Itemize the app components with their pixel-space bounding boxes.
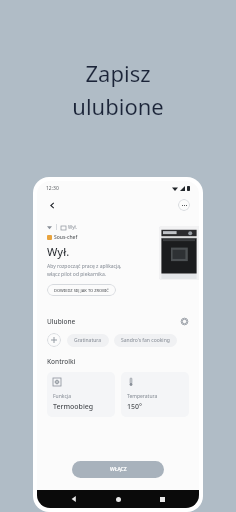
staticText: 12:30 bbox=[46, 185, 59, 192]
button[interactable]: Temperatura bbox=[121, 372, 189, 417]
button[interactable]: Add favorite bbox=[47, 333, 61, 347]
staticText: Ulubione bbox=[47, 317, 76, 326]
button[interactable]: Sandro's fan cooking bbox=[114, 334, 177, 347]
staticText: Aby rozpocząć pracę z aplikacją, włącz p… bbox=[47, 263, 122, 278]
button[interactable]: Favorites settings bbox=[179, 316, 189, 326]
button[interactable]: WŁĄCZ bbox=[72, 461, 164, 478]
staticText: Funkcja bbox=[53, 393, 71, 400]
staticText: Wył. bbox=[47, 244, 70, 259]
button[interactable]: DOWIEDZ SIĘ JAK TO ZROBIĆ bbox=[47, 284, 116, 296]
button[interactable]: Home bbox=[111, 492, 125, 506]
staticText: Gratinatura bbox=[74, 337, 102, 344]
staticText: Sous-chef bbox=[54, 234, 78, 241]
button[interactable]: More options bbox=[178, 199, 190, 211]
staticText: DOWIEDZ SIĘ JAK TO ZROBIĆ bbox=[54, 288, 109, 293]
staticText: ulubione bbox=[72, 91, 164, 121]
button[interactable]: Gratinatura bbox=[67, 334, 109, 347]
button[interactable]: Back bbox=[46, 199, 59, 212]
staticText: WŁĄCZ bbox=[110, 466, 127, 473]
button[interactable]: Funkcja bbox=[47, 372, 115, 417]
staticText: Temperatura bbox=[127, 393, 158, 400]
button[interactable]: Back bbox=[67, 492, 81, 506]
staticText: Zapisz bbox=[85, 58, 151, 88]
staticText: 150° bbox=[127, 402, 143, 412]
staticText: Kontrolki bbox=[47, 357, 76, 366]
button[interactable]: Recents bbox=[155, 492, 169, 506]
staticText: Wył. bbox=[68, 224, 77, 230]
staticText: Termoobieg bbox=[53, 402, 94, 412]
staticText: Sandro's fan cooking bbox=[121, 337, 170, 344]
